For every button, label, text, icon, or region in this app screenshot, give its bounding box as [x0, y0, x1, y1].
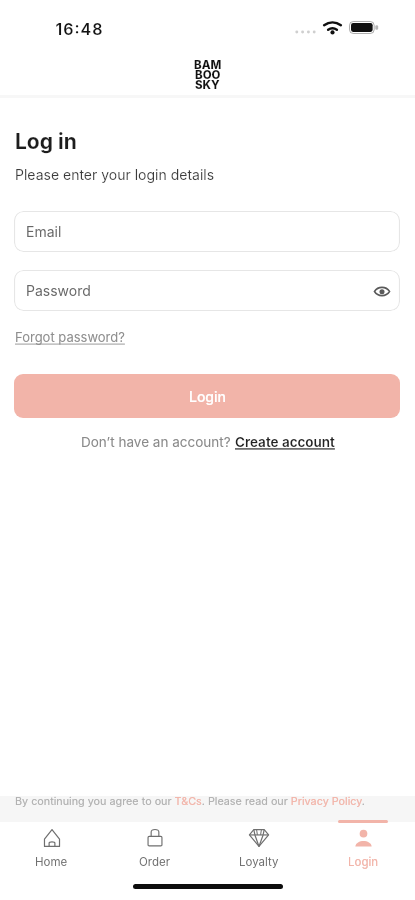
staticText: Order	[139, 855, 171, 869]
button[interactable]: Email	[14, 211, 400, 252]
staticText: Home	[35, 855, 68, 869]
staticText: Loyalty	[239, 855, 279, 869]
button[interactable]: Create account	[235, 434, 335, 450]
staticText: By continuing you agree to our T&Cs. Ple…	[15, 795, 365, 808]
staticText: Please enter your login details	[15, 166, 215, 183]
staticText: Login	[348, 855, 379, 869]
staticText: 16:48	[55, 19, 103, 38]
staticText: BOO	[195, 68, 221, 82]
staticText: Email	[26, 223, 62, 240]
staticText: SKY	[195, 78, 220, 92]
button[interactable]: Order	[103, 822, 207, 878]
button[interactable]: Password	[14, 270, 400, 311]
staticText: Password	[26, 282, 91, 299]
staticText: Don’t have an account?	[81, 434, 235, 450]
button[interactable]: Loyalty	[207, 822, 311, 878]
staticText: BAM	[194, 58, 222, 72]
staticText: Login	[189, 388, 226, 405]
button[interactable]: Login	[14, 374, 400, 418]
button[interactable]: Home	[0, 822, 103, 878]
staticText: Log in	[15, 129, 77, 154]
button[interactable]: Show password	[370, 279, 394, 303]
button[interactable]: Login	[311, 822, 415, 878]
button[interactable]: Forgot password?	[15, 329, 125, 345]
